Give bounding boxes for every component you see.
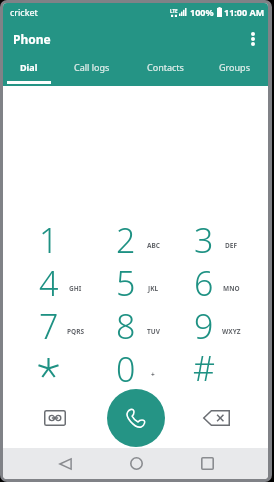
staticText: 4 [39,260,59,303]
staticText: 11:00 AM [224,6,265,18]
staticText: 3 [194,217,214,260]
staticText: ABC [147,241,160,250]
staticText: JKL [148,284,159,293]
button[interactable]: 9 [165,303,243,346]
staticText: WXYZ [222,327,241,336]
button[interactable]: 3 [165,217,243,260]
staticText: 6 [194,260,214,303]
staticText: Call logs [74,61,110,73]
button[interactable]: Backspace [194,396,238,440]
button[interactable]: 1 [10,217,87,260]
staticText: Phone [13,31,51,47]
button[interactable]: 7 [10,303,87,346]
button[interactable]: Groups [201,58,268,86]
staticText: 0 [116,346,136,389]
staticText: # [193,345,215,388]
button[interactable]: 6 [165,260,243,303]
staticText: MNO [223,284,240,293]
staticText: LTE [170,8,178,14]
staticText: DEF [225,241,237,250]
staticText: 9 [194,303,214,346]
staticText: 1 [39,217,59,260]
staticText: PQRS [67,327,85,336]
button[interactable] [10,346,87,389]
button[interactable]: # [165,346,243,389]
button[interactable]: Dial [3,58,55,86]
button[interactable]: Contacts [129,58,201,86]
button[interactable]: Recents [190,448,224,479]
staticText: Dial [20,61,38,73]
button[interactable]: 5 [87,260,165,303]
staticText: 7 [39,303,59,346]
button[interactable]: 8 [87,303,165,346]
staticText: Contacts [147,61,184,73]
button[interactable]: Voicemail [33,396,77,440]
staticText: Groups [219,61,250,73]
staticText: 2 [116,217,136,260]
staticText: TUV [147,327,160,336]
button[interactable]: Call logs [55,58,129,86]
button[interactable]: Call [107,389,165,447]
button[interactable]: More options [238,24,268,54]
button[interactable]: Back [48,448,82,479]
staticText: 100% [190,6,214,18]
staticText: cricket [10,6,38,18]
staticText: GHI [69,284,82,293]
staticText: 5 [116,260,136,303]
button[interactable]: 0 [87,346,165,389]
button[interactable]: Home [119,448,153,479]
button[interactable]: 4 [10,260,87,303]
button[interactable]: 2 [87,217,165,260]
staticText: + [151,370,155,379]
staticText: 8 [116,303,136,346]
